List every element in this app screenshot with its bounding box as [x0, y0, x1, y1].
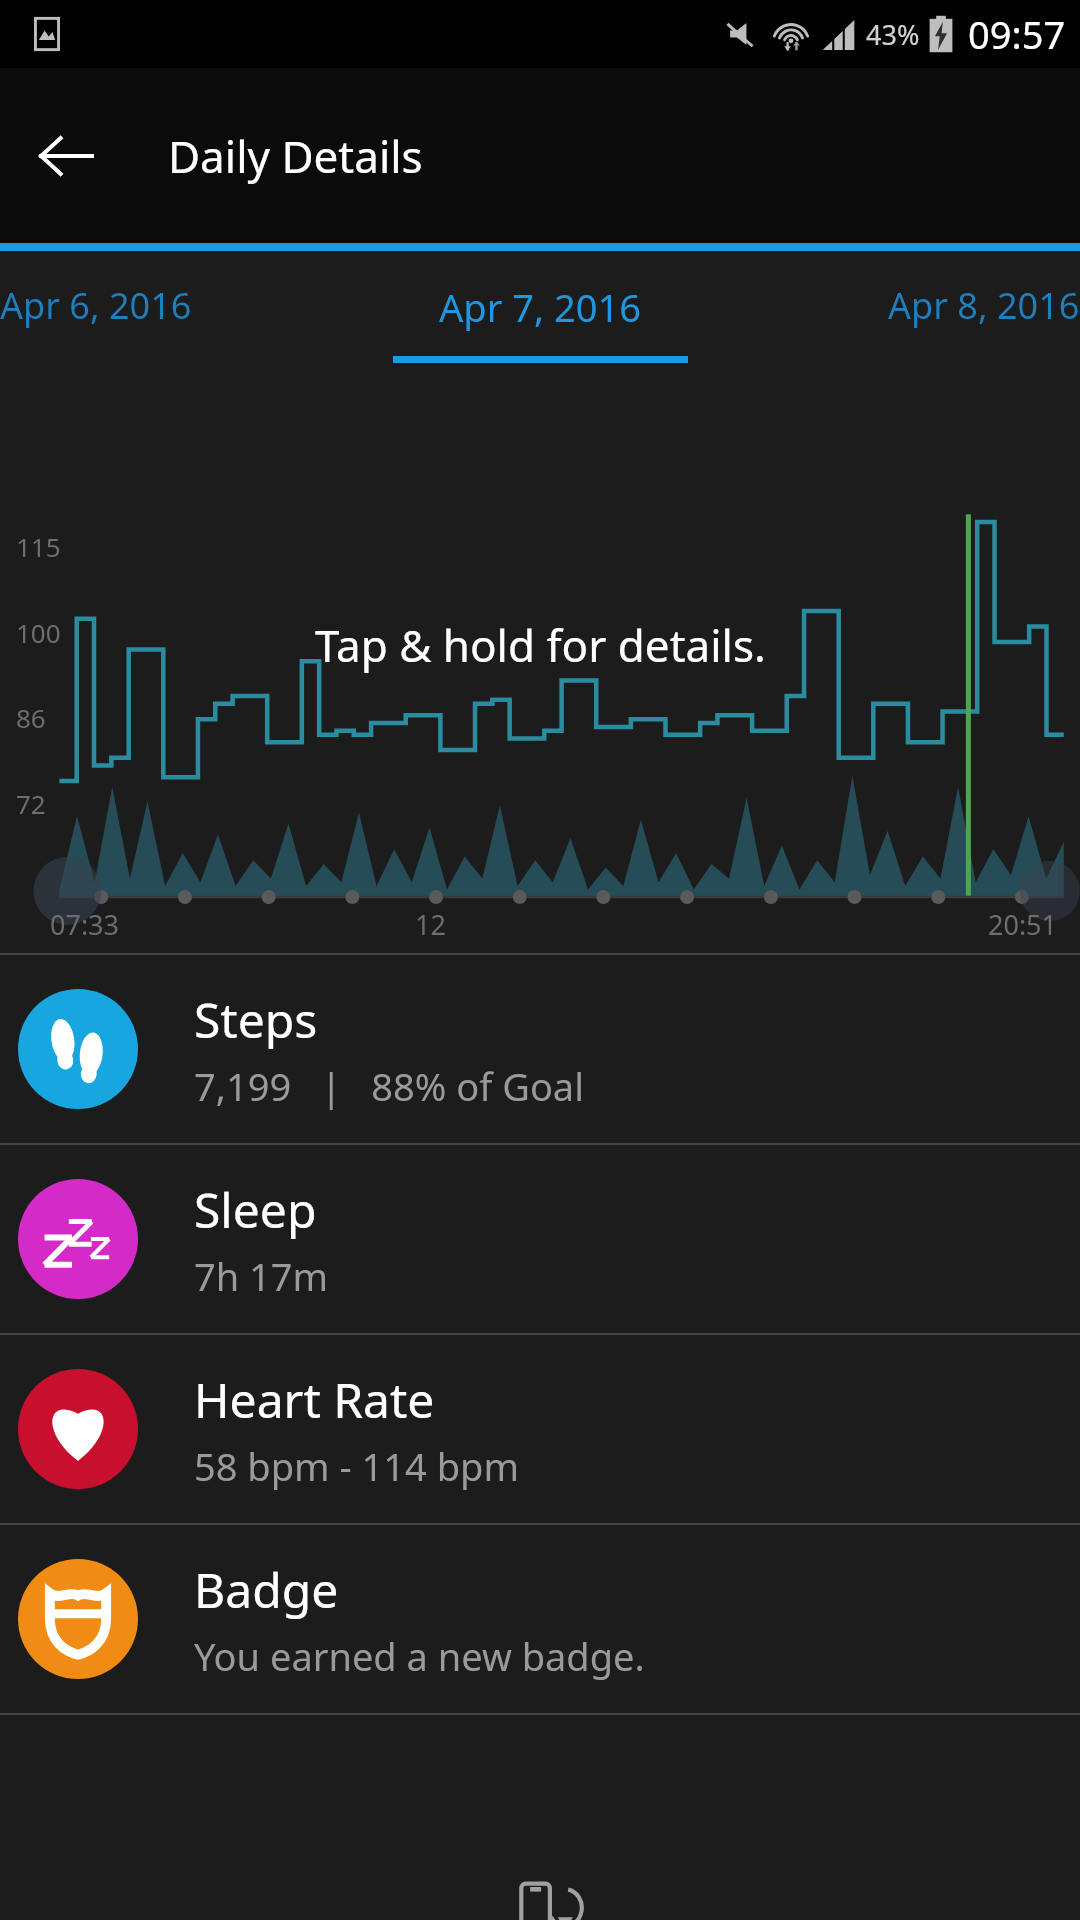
- staticText: Tap & hold for details.: [315, 615, 766, 675]
- button[interactable]: Badge: [0, 1525, 1080, 1713]
- staticText: Daily Details: [168, 126, 423, 186]
- staticText: 7,199 | 88% of Goal: [194, 1060, 584, 1112]
- staticText: 58 bpm - 114 bpm: [194, 1440, 519, 1492]
- button[interactable]: Apr 7, 2016: [360, 251, 720, 363]
- button[interactable]: Sync: [0, 1862, 1080, 1920]
- staticText: Sleep: [194, 1177, 317, 1242]
- staticText: 09:57: [968, 8, 1066, 60]
- staticText: 07:33: [50, 906, 120, 943]
- button[interactable]: Back: [24, 114, 108, 198]
- staticText: 86: [16, 700, 46, 735]
- staticText: Heart Rate: [194, 1367, 435, 1432]
- staticText: 100: [16, 615, 61, 650]
- staticText: 12: [415, 906, 446, 943]
- staticText: Apr 8, 2016: [888, 281, 1080, 330]
- staticText: Apr 6, 2016: [0, 281, 192, 330]
- staticText: 7h 17m: [194, 1250, 329, 1302]
- staticText: You earned a new badge.: [194, 1630, 645, 1682]
- staticText: Apr 7, 2016: [439, 281, 641, 333]
- button[interactable]: Apr 6, 2016: [0, 251, 360, 363]
- button[interactable]: 115: [0, 363, 1080, 953]
- staticText: Badge: [194, 1557, 339, 1622]
- button[interactable]: Heart Rate: [0, 1335, 1080, 1523]
- button[interactable]: Steps: [0, 955, 1080, 1143]
- staticText: 72: [16, 786, 46, 821]
- staticText: Steps: [194, 987, 318, 1052]
- staticText: 43%: [866, 16, 920, 53]
- button[interactable]: Apr 8, 2016: [720, 251, 1080, 363]
- staticText: 115: [16, 529, 61, 564]
- button[interactable]: Sleep: [0, 1145, 1080, 1333]
- staticText: 20:51: [988, 906, 1058, 943]
